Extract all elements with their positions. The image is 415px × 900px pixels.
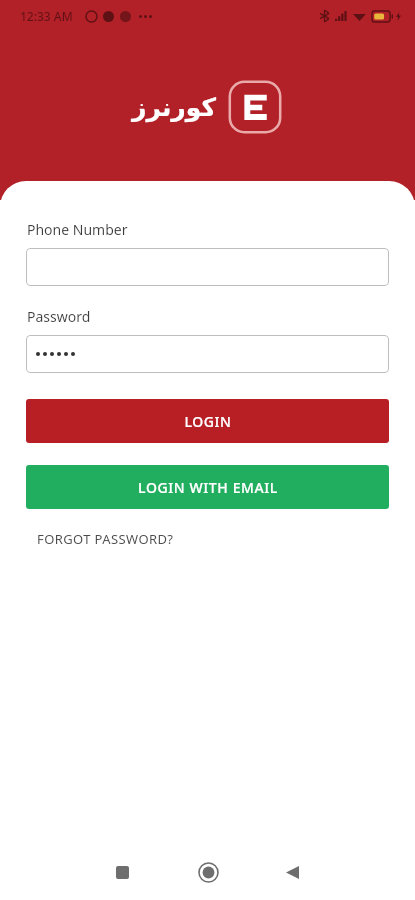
staticText: Phone Number [27, 220, 128, 239]
staticText: LOGIN [184, 412, 232, 431]
button[interactable] [26, 248, 389, 286]
button[interactable]: LOGIN [26, 399, 389, 443]
staticText: 12:33 AM [20, 8, 73, 24]
staticText: Password [27, 307, 91, 326]
staticText: FORGOT PASSWORD? [37, 530, 174, 548]
button[interactable] [26, 335, 389, 373]
other: Corners logo [227, 79, 283, 135]
button[interactable]: FORGOT PASSWORD? [26, 522, 185, 556]
button[interactable]: LOGIN WITH EMAIL [26, 465, 389, 509]
button[interactable]: Back [270, 850, 314, 894]
staticText: كورنرز [132, 93, 216, 122]
staticText: LOGIN WITH EMAIL [138, 478, 278, 497]
button[interactable]: Recents [100, 850, 144, 894]
button[interactable]: Home [186, 850, 230, 894]
